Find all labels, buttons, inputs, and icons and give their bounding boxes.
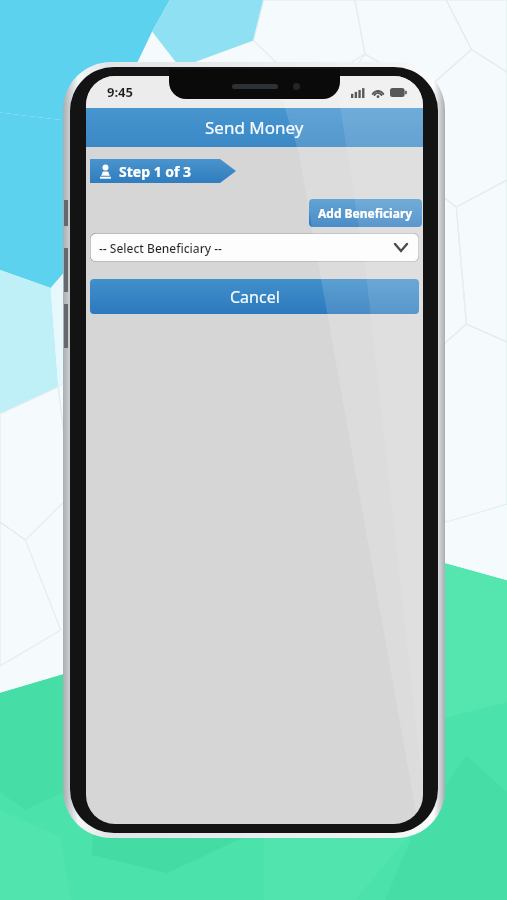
- button[interactable]: -- Select Beneficiary --: [90, 233, 419, 262]
- staticText: Send Money: [205, 116, 304, 139]
- button[interactable]: Step 1 of 3: [90, 159, 236, 183]
- staticText: -- Select Beneficiary --: [99, 240, 222, 256]
- button[interactable]: Add Beneficiary: [309, 199, 422, 227]
- staticText: Add Beneficiary: [318, 205, 413, 221]
- staticText: 9:45: [107, 83, 133, 101]
- staticText: Cancel: [230, 286, 280, 308]
- staticText: Step 1 of 3: [119, 162, 192, 181]
- button[interactable]: Cancel: [90, 279, 419, 314]
